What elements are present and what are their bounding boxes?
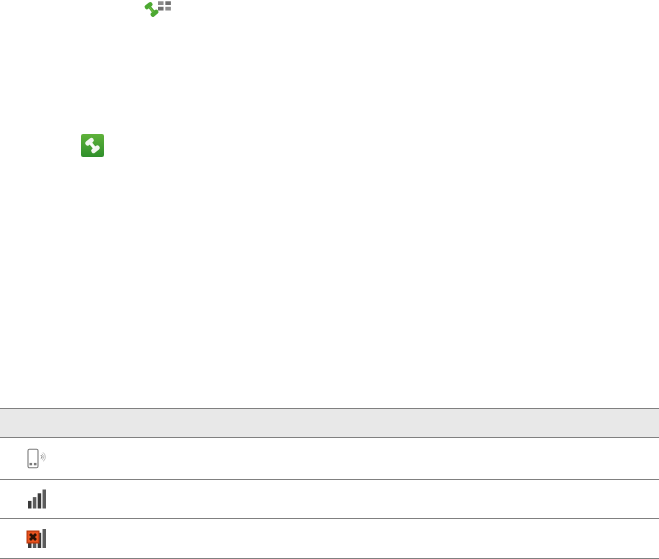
button[interactable]: Dial pad	[144, 0, 172, 18]
button[interactable]: Vibrate	[0, 438, 659, 479]
button[interactable]: No service	[0, 519, 659, 558]
button[interactable]: Signal strength	[0, 480, 659, 518]
button[interactable]: Phone app	[81, 134, 104, 157]
